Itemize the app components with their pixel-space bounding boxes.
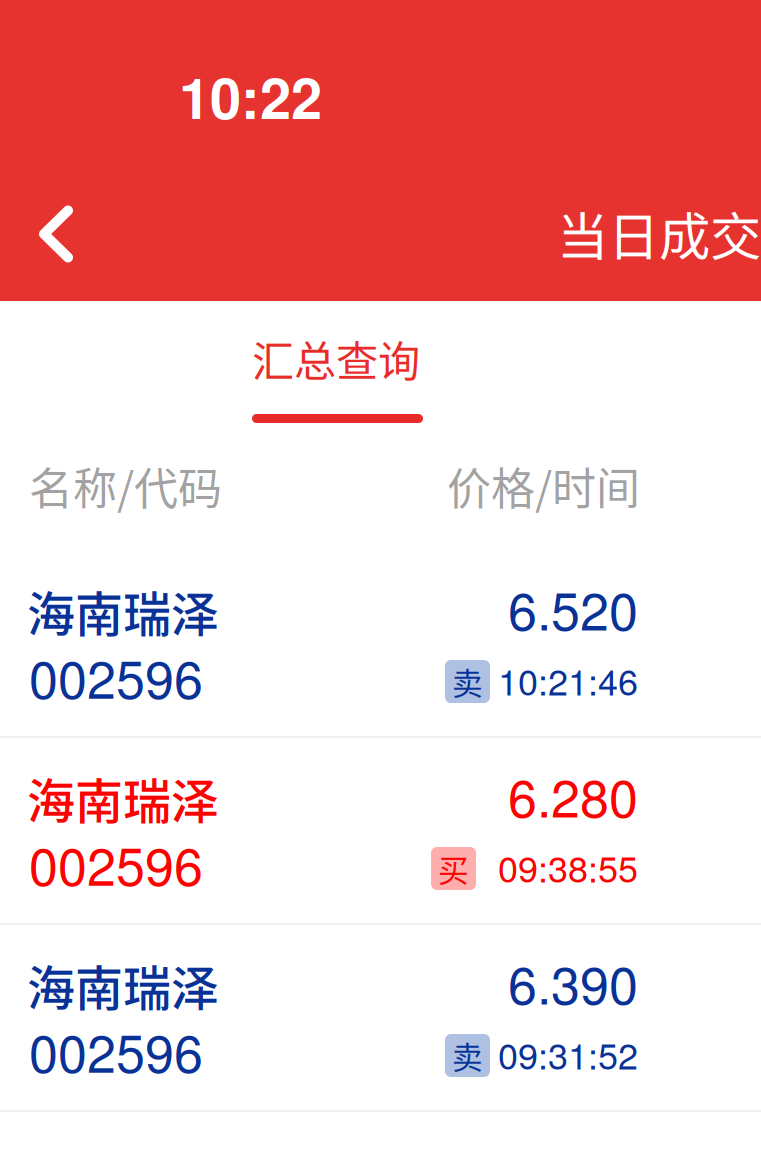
staticText: 名称/代码: [29, 454, 222, 518]
staticText: 卖: [452, 1033, 483, 1078]
button[interactable]: 汇总查询: [232, 301, 443, 432]
staticText: 6.280: [508, 758, 638, 832]
button[interactable]: 海南瑞泽: [0, 738, 761, 925]
staticText: 卖: [452, 659, 483, 704]
staticText: 10:21:46: [498, 654, 638, 706]
staticText: 6.390: [508, 945, 638, 1019]
staticText: 海南瑞泽: [27, 950, 219, 1019]
staticText: 海南瑞泽: [27, 576, 219, 645]
staticText: 海南瑞泽: [27, 763, 219, 832]
staticText: 09:31:52: [498, 1028, 638, 1080]
staticText: 002596: [29, 1013, 203, 1087]
staticText: 002596: [29, 639, 203, 713]
staticText: 002596: [29, 826, 203, 900]
button[interactable]: 海南瑞泽: [0, 551, 761, 738]
staticText: 价格/时间: [447, 454, 640, 518]
staticText: 买: [438, 846, 469, 891]
button[interactable]: Back: [6, 186, 106, 282]
staticText: 09:38:55: [498, 841, 638, 893]
staticText: 当日成交: [557, 196, 761, 270]
staticText: 10:22: [179, 56, 322, 136]
staticText: 汇总查询: [252, 328, 420, 389]
staticText: 6.520: [508, 571, 638, 645]
button[interactable]: 海南瑞泽: [0, 925, 761, 1112]
